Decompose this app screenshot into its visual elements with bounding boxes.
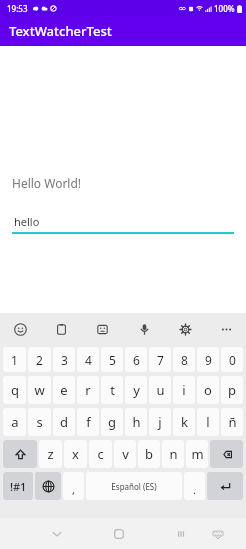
staticText: 9 bbox=[205, 352, 212, 368]
button[interactable]: Stickers bbox=[92, 319, 112, 339]
staticText: 0 bbox=[229, 352, 236, 368]
button[interactable]: 8 bbox=[173, 347, 195, 372]
staticText: hello bbox=[14, 214, 40, 229]
staticText: w bbox=[34, 381, 45, 399]
staticText: d bbox=[60, 413, 68, 431]
staticText: g bbox=[108, 413, 116, 431]
button[interactable]: m bbox=[186, 440, 208, 468]
button[interactable]: Voice input bbox=[134, 319, 154, 339]
button[interactable]: o bbox=[197, 376, 219, 404]
staticText: Hello World! bbox=[12, 175, 82, 191]
staticText: 7 bbox=[157, 352, 164, 368]
button[interactable]: 2 bbox=[28, 347, 51, 372]
button[interactable]: y bbox=[125, 376, 147, 404]
staticText: c bbox=[97, 445, 104, 463]
staticText: , bbox=[72, 482, 75, 497]
button[interactable]: c bbox=[89, 440, 112, 468]
staticText: 5 bbox=[109, 352, 116, 368]
button[interactable]: x bbox=[64, 440, 87, 468]
button[interactable]: n bbox=[162, 440, 184, 468]
button[interactable]: v bbox=[114, 440, 136, 468]
button[interactable]: ñ bbox=[221, 408, 243, 436]
staticText: 6 bbox=[133, 352, 140, 368]
button[interactable]: Backspace bbox=[210, 440, 243, 468]
button[interactable]: i bbox=[173, 376, 195, 404]
staticText: 1 bbox=[11, 352, 18, 368]
button[interactable]: h bbox=[125, 408, 147, 436]
button[interactable]: e bbox=[53, 376, 75, 404]
button[interactable]: . bbox=[184, 472, 205, 500]
button[interactable]: w bbox=[28, 376, 51, 404]
button[interactable]: 5 bbox=[101, 347, 123, 372]
button[interactable]: 1 bbox=[3, 347, 26, 372]
button[interactable]: q bbox=[3, 376, 26, 404]
staticText: y bbox=[133, 381, 140, 399]
button[interactable]: 6 bbox=[125, 347, 147, 372]
staticText: Español (ES) bbox=[111, 481, 157, 492]
staticText: i bbox=[182, 381, 186, 399]
staticText: f bbox=[86, 413, 91, 431]
staticText: . bbox=[193, 482, 196, 497]
staticText: !#1 bbox=[10, 479, 27, 494]
button[interactable]: Shift bbox=[3, 440, 37, 468]
staticText: n bbox=[169, 445, 178, 463]
button[interactable]: Settings bbox=[175, 319, 195, 339]
staticText: q bbox=[11, 381, 19, 399]
staticText: ñ bbox=[228, 413, 237, 431]
staticText: u bbox=[156, 381, 165, 399]
button[interactable]: Enter bbox=[207, 472, 243, 500]
staticText: 3 bbox=[61, 352, 68, 368]
button[interactable]: Emoji bbox=[10, 319, 30, 339]
button[interactable]: r bbox=[77, 376, 99, 404]
button[interactable]: l bbox=[197, 408, 219, 436]
staticText: 8 bbox=[181, 352, 188, 368]
staticText: o bbox=[204, 381, 212, 399]
staticText: j bbox=[158, 413, 162, 431]
button[interactable]: s bbox=[28, 408, 51, 436]
button[interactable]: Language bbox=[35, 472, 61, 500]
button[interactable]: t bbox=[101, 376, 123, 404]
staticText: h bbox=[132, 413, 141, 431]
staticText: x bbox=[72, 445, 79, 463]
button[interactable]: d bbox=[53, 408, 75, 436]
button[interactable]: Home bbox=[107, 522, 131, 546]
staticText: a bbox=[11, 413, 19, 431]
button[interactable]: b bbox=[138, 440, 160, 468]
button[interactable]: 0 bbox=[221, 347, 243, 372]
staticText: e bbox=[60, 381, 68, 399]
staticText: 2 bbox=[36, 352, 43, 368]
staticText: r bbox=[85, 381, 91, 399]
staticText: 100% bbox=[214, 3, 235, 14]
button[interactable]: Recents bbox=[169, 522, 193, 546]
button[interactable]: k bbox=[173, 408, 195, 436]
button[interactable]: f bbox=[77, 408, 99, 436]
button[interactable]: j bbox=[149, 408, 171, 436]
staticText: TextWatcherTest bbox=[9, 22, 112, 40]
button[interactable]: !#1 bbox=[3, 472, 33, 500]
staticText: v bbox=[122, 445, 129, 463]
button[interactable]: 3 bbox=[53, 347, 75, 372]
staticText: b bbox=[145, 445, 153, 463]
button[interactable]: hello bbox=[12, 214, 234, 234]
button[interactable]: Back bbox=[45, 522, 69, 546]
staticText: z bbox=[47, 445, 54, 463]
button[interactable]: Español (ES) bbox=[86, 472, 182, 500]
staticText: l bbox=[206, 413, 210, 431]
button[interactable]: , bbox=[63, 472, 84, 500]
button[interactable]: Clipboard bbox=[51, 319, 71, 339]
staticText: p bbox=[228, 381, 236, 399]
staticText: k bbox=[181, 413, 188, 431]
staticText: t bbox=[110, 381, 115, 399]
button[interactable]: More options bbox=[216, 319, 236, 339]
button[interactable]: 7 bbox=[149, 347, 171, 372]
button[interactable]: 4 bbox=[77, 347, 99, 372]
button[interactable]: g bbox=[101, 408, 123, 436]
button[interactable]: Hide keyboard bbox=[206, 522, 230, 546]
staticText: m bbox=[191, 445, 204, 463]
button[interactable]: z bbox=[39, 440, 62, 468]
staticText: 4 bbox=[85, 352, 92, 368]
button[interactable]: 9 bbox=[197, 347, 219, 372]
button[interactable]: a bbox=[3, 408, 26, 436]
button[interactable]: u bbox=[149, 376, 171, 404]
button[interactable]: p bbox=[221, 376, 243, 404]
